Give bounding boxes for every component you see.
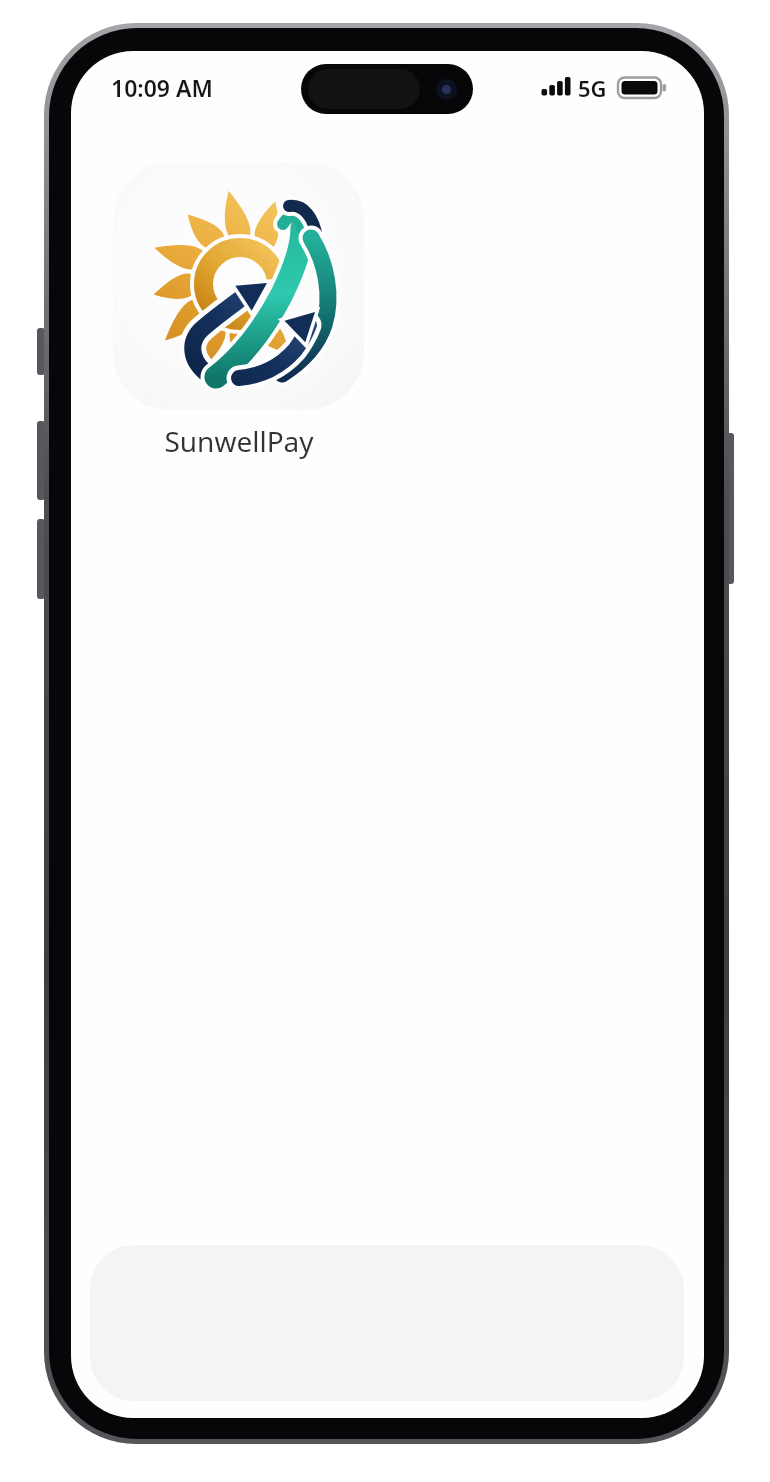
staticText: 10:09 AM: [111, 72, 213, 103]
staticText: SunwellPay: [164, 422, 314, 460]
staticText: 5G: [578, 73, 607, 103]
button[interactable]: [113, 162, 364, 410]
